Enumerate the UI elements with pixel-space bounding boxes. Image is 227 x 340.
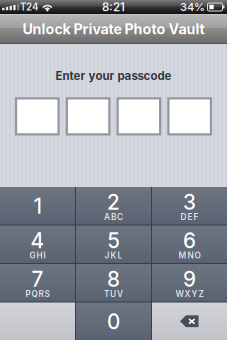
staticText: 3 — [183, 190, 196, 215]
staticText: Enter your passcode — [55, 69, 171, 83]
staticText: 1 — [33, 194, 41, 219]
button[interactable]: 1 — [0, 187, 75, 224]
staticText: Unlock Private Photo Vault — [22, 20, 204, 38]
staticText: MNO — [178, 250, 200, 260]
button[interactable]: 0 — [76, 302, 151, 340]
button[interactable]: 4 — [0, 225, 75, 263]
staticText: ABC — [104, 212, 123, 222]
staticText: PQRS — [25, 289, 49, 299]
button[interactable]: 8 — [76, 264, 151, 301]
button[interactable]: Delete — [152, 302, 227, 340]
staticText: 34% — [180, 0, 205, 14]
staticText: 8 — [107, 267, 120, 292]
button[interactable]: 3 — [152, 187, 227, 224]
staticText: JKL — [104, 250, 122, 260]
button[interactable]: 2 — [76, 187, 151, 224]
staticText: 5 — [107, 228, 119, 253]
staticText: 6 — [183, 228, 196, 253]
button[interactable]: 6 — [152, 225, 227, 263]
staticText: T24 — [20, 1, 38, 13]
staticText: 0 — [107, 309, 120, 334]
staticText: GHI — [29, 250, 45, 260]
staticText: 4 — [30, 228, 44, 253]
staticText: 8:21 — [102, 0, 125, 14]
staticText: 9 — [183, 267, 196, 292]
staticText: DEF — [180, 212, 198, 222]
staticText: WXYZ — [175, 289, 203, 299]
button[interactable]: 5 — [76, 225, 151, 263]
staticText: TUV — [104, 289, 123, 299]
staticText: 7 — [31, 267, 43, 292]
button[interactable]: 7 — [0, 264, 75, 301]
staticText: 2 — [107, 190, 120, 215]
button[interactable]: 9 — [152, 264, 227, 301]
